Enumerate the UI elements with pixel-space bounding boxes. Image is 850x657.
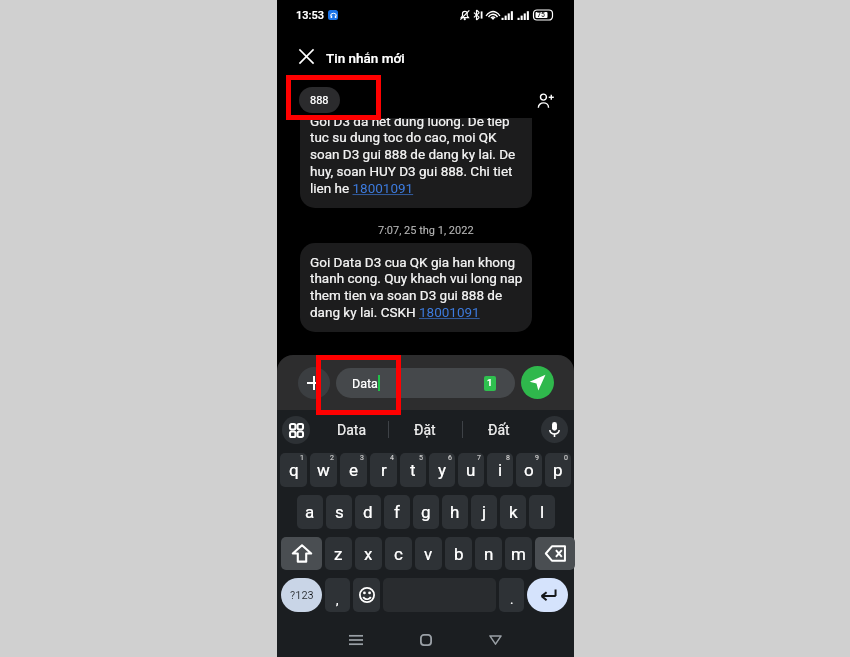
button[interactable]: Home xyxy=(405,621,446,657)
staticText: l xyxy=(540,502,545,522)
button[interactable]: Keyboard options xyxy=(282,416,310,444)
staticText: 5 xyxy=(419,454,423,462)
button[interactable]: v xyxy=(415,537,442,570)
button[interactable]: p xyxy=(545,453,571,487)
staticText: , xyxy=(336,592,339,607)
button[interactable]: , xyxy=(325,578,350,612)
button[interactable]: b xyxy=(445,537,472,570)
button[interactable]: Backspace xyxy=(535,537,575,570)
button[interactable]: Enter xyxy=(527,578,568,612)
button[interactable]: s xyxy=(326,495,352,529)
staticText: g xyxy=(421,502,431,522)
staticText: 75 xyxy=(537,11,546,19)
button[interactable]: n xyxy=(475,537,502,570)
staticText: Đất xyxy=(488,422,510,438)
button[interactable]: Shift xyxy=(281,537,322,570)
staticText: Data xyxy=(337,422,366,438)
staticText: 8 xyxy=(506,454,510,462)
button[interactable]: t xyxy=(400,453,426,487)
button[interactable]: l xyxy=(529,495,555,529)
staticText: t xyxy=(410,460,416,480)
staticText: Đặt xyxy=(414,422,436,438)
button[interactable]: j xyxy=(471,495,497,529)
staticText: u xyxy=(466,460,476,480)
staticText: b xyxy=(454,544,464,564)
staticText: Goi Data D3 cua QK gia han khong thanh c… xyxy=(310,254,523,321)
button[interactable]: e xyxy=(340,453,367,487)
button[interactable]: z xyxy=(325,537,352,570)
button[interactable]: Goi Data D3 cua QK gia han khong thanh c… xyxy=(300,243,532,332)
button[interactable]: w xyxy=(310,453,337,487)
button[interactable]: q xyxy=(280,453,307,487)
staticText: o xyxy=(524,460,534,480)
staticText: Tin nhắn mới xyxy=(326,50,405,66)
staticText: h xyxy=(450,502,460,522)
staticText: ?123 xyxy=(290,589,314,602)
button[interactable]: g xyxy=(413,495,439,529)
button[interactable]: Goi D3 da het dung luong. De tiep tuc su… xyxy=(300,118,532,208)
staticText: x xyxy=(364,544,373,564)
button[interactable]: Recents xyxy=(335,621,376,657)
staticText: 888 xyxy=(310,94,329,107)
staticText: k xyxy=(509,502,518,522)
button[interactable]: Đất xyxy=(462,410,536,449)
button[interactable]: Send xyxy=(521,366,554,399)
button[interactable]: d xyxy=(355,495,381,529)
button[interactable]: 888 xyxy=(299,87,340,113)
button[interactable]: o xyxy=(516,453,542,487)
staticText: 1 xyxy=(487,378,493,389)
staticText: Goi D3 da het dung luong. De tiep tuc su… xyxy=(310,118,523,197)
button[interactable]: ?123 xyxy=(281,578,322,612)
staticText: 4 xyxy=(390,454,394,462)
staticText: c xyxy=(394,544,403,564)
button[interactable]: y xyxy=(429,453,455,487)
staticText: 7:07, 25 thg 1, 2022 xyxy=(378,224,474,237)
staticText: 13:53 xyxy=(296,9,324,22)
staticText: q xyxy=(289,460,299,480)
staticText: n xyxy=(484,544,494,564)
button[interactable]: Add recipient xyxy=(532,87,558,113)
button[interactable]: Close xyxy=(286,38,326,74)
staticText: z xyxy=(334,544,343,564)
staticText: 2 xyxy=(330,454,334,462)
staticText: e xyxy=(349,460,359,480)
button[interactable]: Đặt xyxy=(388,410,462,449)
button[interactable]: r xyxy=(370,453,397,487)
button[interactable]: f xyxy=(384,495,410,529)
staticText: 1 xyxy=(300,454,304,462)
staticText: y xyxy=(438,460,447,480)
staticText: p xyxy=(553,460,563,480)
button[interactable]: m xyxy=(505,537,532,570)
staticText: 6 xyxy=(448,454,452,462)
staticText: 7 xyxy=(477,454,481,462)
staticText: 9 xyxy=(535,454,539,462)
button[interactable]: h xyxy=(442,495,468,529)
staticText: Data xyxy=(352,376,378,391)
staticText: m xyxy=(511,544,526,564)
button[interactable]: k xyxy=(500,495,526,529)
button[interactable]: c xyxy=(385,537,412,570)
button[interactable]: a xyxy=(297,495,323,529)
staticText: a xyxy=(305,502,315,522)
staticText: r xyxy=(381,460,387,480)
button[interactable]: u xyxy=(458,453,484,487)
staticText: . xyxy=(510,592,514,607)
staticText: i xyxy=(498,460,503,480)
button[interactable]: Voice input xyxy=(541,416,568,443)
staticText: v xyxy=(424,544,433,564)
staticText: f xyxy=(394,502,400,522)
staticText: 3 xyxy=(360,454,364,462)
button[interactable]: i xyxy=(487,453,513,487)
button[interactable]: Add attachment xyxy=(298,367,330,399)
button[interactable]: Back xyxy=(475,621,516,657)
staticText: 0 xyxy=(564,454,568,462)
button[interactable]: x xyxy=(355,537,382,570)
staticText: s xyxy=(335,502,344,522)
staticText: w xyxy=(317,460,330,480)
button[interactable]: . xyxy=(499,578,524,612)
button[interactable]: Data xyxy=(314,410,388,449)
button[interactable]: Data xyxy=(336,368,515,398)
staticText: d xyxy=(363,502,373,522)
button[interactable]: Emoji xyxy=(353,578,380,612)
